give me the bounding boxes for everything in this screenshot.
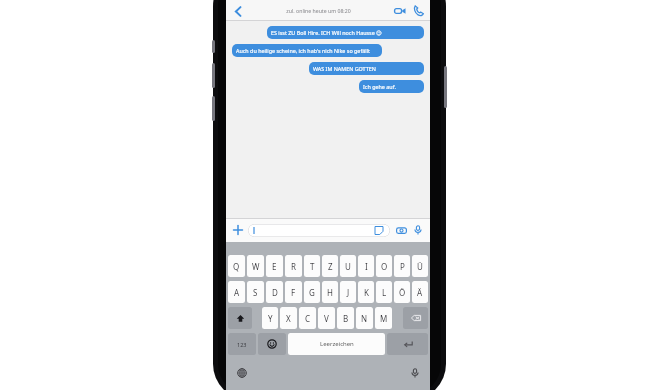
staticText: M <box>380 313 388 324</box>
button[interactable]: K <box>358 281 374 303</box>
button[interactable]: T <box>304 255 320 277</box>
button[interactable]: O <box>376 255 392 277</box>
button[interactable]: C <box>299 307 316 329</box>
button[interactable]: V <box>318 307 335 329</box>
staticText: D <box>272 287 278 298</box>
staticText: Ö <box>399 287 406 298</box>
button[interactable]: Z <box>322 255 338 277</box>
button[interactable]: B <box>337 307 354 329</box>
button[interactable]: F <box>285 281 302 303</box>
staticText: E <box>272 261 277 272</box>
button[interactable]: Auch du heilige scheine, ich hab's nich … <box>232 44 382 57</box>
button[interactable] <box>248 224 390 237</box>
button[interactable]: J <box>340 281 356 303</box>
staticText: X <box>286 313 291 324</box>
staticText: WAS IM NAMEN GOTTEN <box>313 65 376 72</box>
button[interactable]: N <box>356 307 373 329</box>
button[interactable]: Y <box>262 307 278 329</box>
button[interactable]: L <box>376 281 392 303</box>
staticText: J <box>347 287 350 298</box>
staticText: H <box>327 287 333 298</box>
button[interactable]: A <box>228 281 245 303</box>
button[interactable]: U <box>340 255 356 277</box>
button[interactable]: M <box>375 307 392 329</box>
button[interactable]: R <box>285 255 302 277</box>
button[interactable]: Dictation <box>407 365 422 380</box>
staticText: V <box>324 313 329 324</box>
staticText: K <box>364 287 369 298</box>
button[interactable]: Ich gehe auf. <box>359 80 424 93</box>
button[interactable]: G <box>304 281 320 303</box>
staticText: T <box>310 261 315 272</box>
staticText: P <box>400 261 405 272</box>
staticText: W <box>252 261 260 272</box>
staticText: S <box>253 287 258 298</box>
staticText: F <box>291 287 296 298</box>
button[interactable]: Shift <box>228 307 252 329</box>
button[interactable]: X <box>280 307 297 329</box>
staticText: N <box>361 313 368 324</box>
button[interactable]: ES isst ZU Boll Hire. ICH Will noch Haus… <box>267 26 424 39</box>
staticText: 123 <box>237 341 247 348</box>
staticText: O <box>381 261 388 272</box>
button[interactable]: E <box>266 255 283 277</box>
button[interactable]: W <box>247 255 264 277</box>
staticText: Ä <box>417 287 423 298</box>
staticText: G <box>309 287 315 298</box>
button[interactable]: D <box>266 281 283 303</box>
staticText: Q <box>233 261 240 272</box>
button[interactable]: Emoji <box>258 333 286 355</box>
button[interactable]: Ä <box>412 281 428 303</box>
button[interactable]: Numbers <box>228 333 256 355</box>
button[interactable]: Leerzeichen <box>288 333 385 355</box>
staticText: Ü <box>417 261 423 272</box>
button[interactable]: Q <box>228 255 245 277</box>
button[interactable]: Camera <box>394 223 408 237</box>
staticText: R <box>291 261 296 272</box>
staticText: L <box>382 287 387 298</box>
button[interactable]: Add attachment <box>231 223 245 237</box>
button[interactable]: Change keyboard language <box>234 365 249 380</box>
staticText: Z <box>328 261 333 272</box>
button[interactable]: Ö <box>394 281 410 303</box>
staticText: Leerzeichen <box>320 340 354 348</box>
button[interactable]: WAS IM NAMEN GOTTEN <box>309 62 424 75</box>
button[interactable]: P <box>394 255 410 277</box>
button[interactable]: Backspace <box>403 307 428 329</box>
button[interactable]: H <box>322 281 338 303</box>
staticText: ES isst ZU Boll Hire. ICH Will noch Haus… <box>271 29 382 36</box>
staticText: Y <box>268 313 273 324</box>
button[interactable]: Voice message <box>411 223 425 237</box>
button[interactable]: Return <box>387 333 428 355</box>
button[interactable]: Ü <box>412 255 428 277</box>
staticText: C <box>305 313 311 324</box>
button[interactable]: Back <box>230 3 246 19</box>
button[interactable]: Call <box>411 3 426 18</box>
staticText: Auch du heilige scheine, ich hab's nich … <box>236 47 371 54</box>
staticText: zul. online heute um 08:20 <box>286 7 351 14</box>
staticText: U <box>345 261 351 272</box>
button[interactable]: S <box>247 281 264 303</box>
staticText: B <box>343 313 349 324</box>
staticText: Ich gehe auf. <box>363 83 396 90</box>
button[interactable]: Video call <box>392 3 407 18</box>
staticText: I <box>365 261 368 272</box>
button[interactable]: I <box>358 255 374 277</box>
staticText: A <box>234 287 240 298</box>
